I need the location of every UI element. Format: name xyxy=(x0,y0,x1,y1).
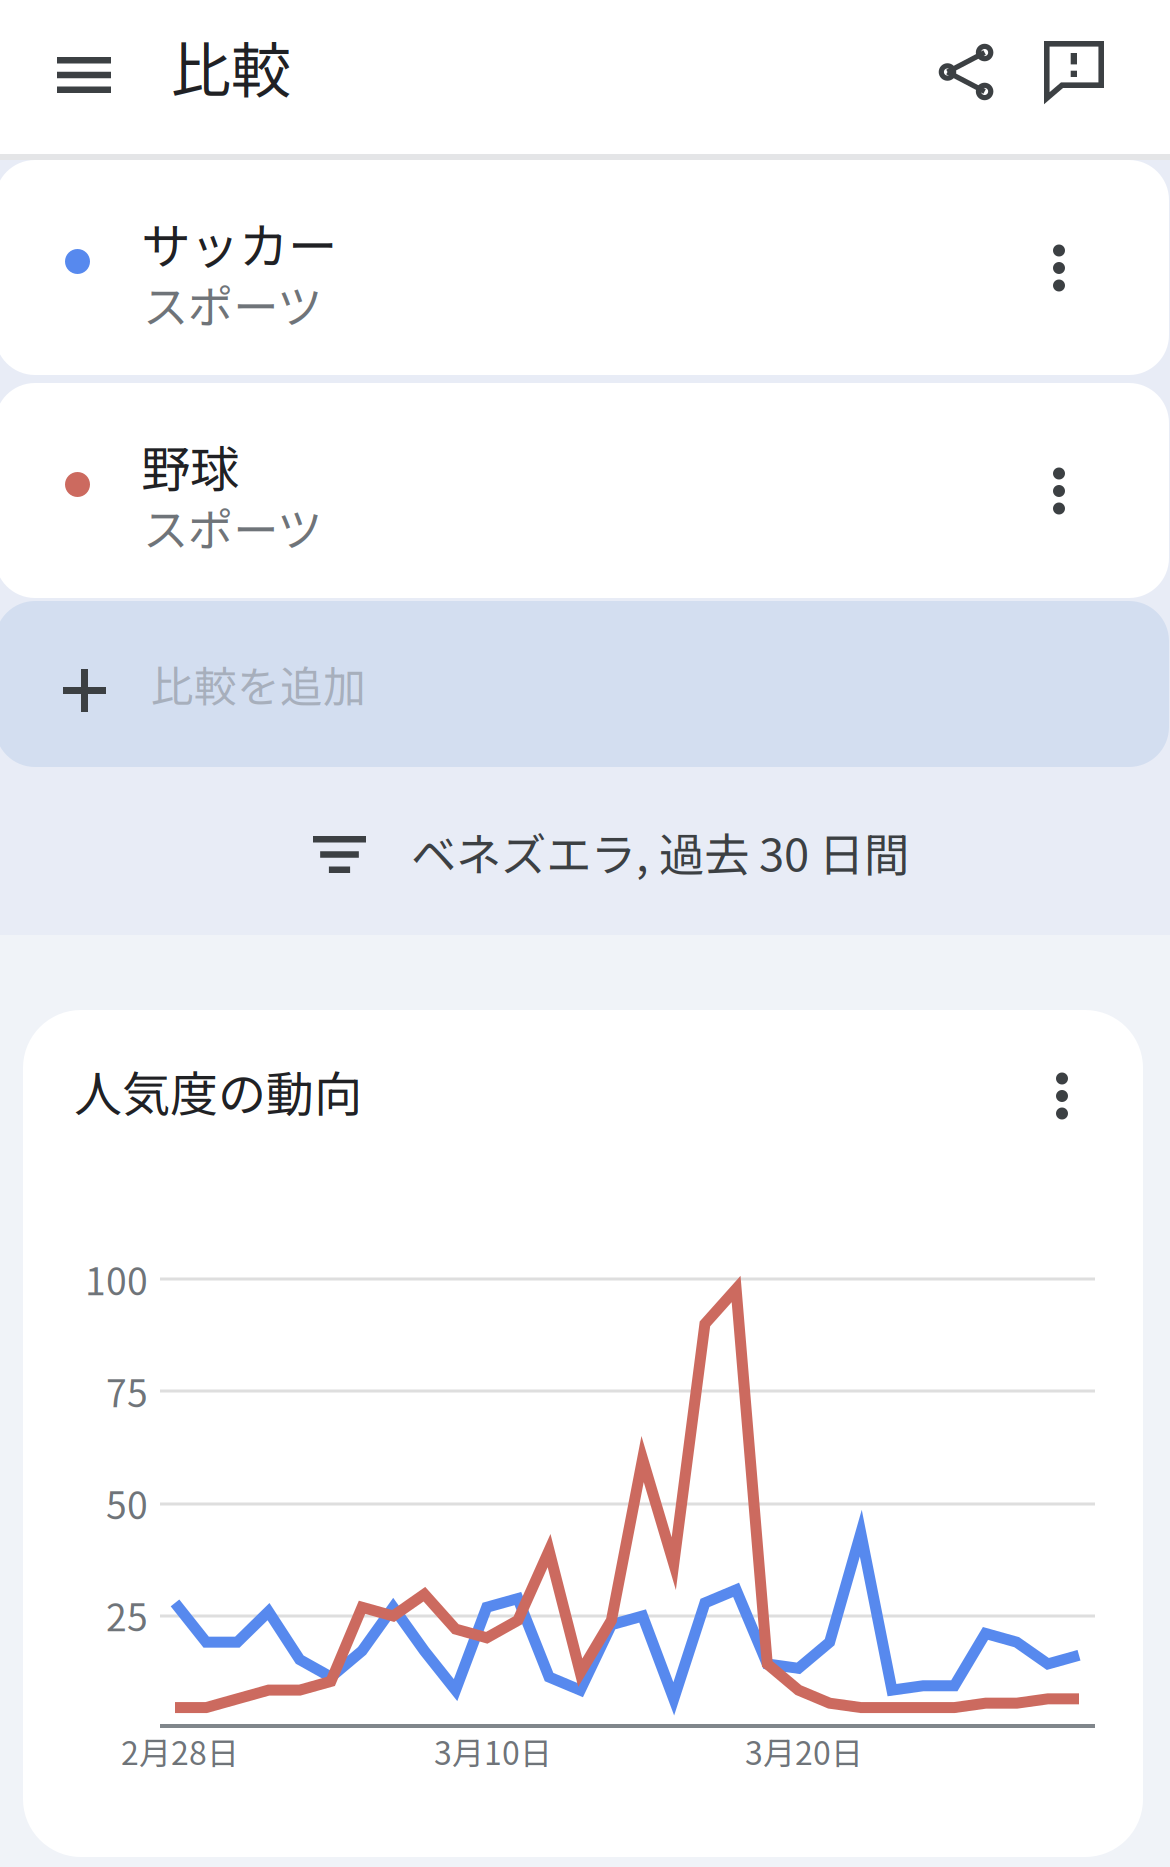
staticText: 2月28日 xyxy=(121,1728,239,1774)
button[interactable]: 比較を追加 xyxy=(0,601,1169,767)
staticText: 100 xyxy=(85,1252,148,1306)
button[interactable]: 野球 xyxy=(0,383,1169,598)
button[interactable]: Menu xyxy=(31,22,137,128)
staticText: 3月20日 xyxy=(745,1728,863,1774)
button[interactable]: Options xyxy=(1019,443,1099,539)
button[interactable]: サッカー xyxy=(0,160,1169,375)
staticText: 3月10日 xyxy=(434,1728,552,1774)
button[interactable]: Chart options xyxy=(1022,1048,1102,1144)
staticText: 比較を追加 xyxy=(151,653,366,715)
staticText: 野球 xyxy=(141,430,239,501)
staticText: 25 xyxy=(106,1588,148,1642)
staticText: 50 xyxy=(106,1476,148,1530)
staticText: ベネズエラ, 過去 30 日間 xyxy=(411,819,909,885)
staticText: スポーツ xyxy=(143,494,322,560)
staticText: スポーツ xyxy=(143,271,322,337)
staticText: サッカー xyxy=(141,207,337,278)
staticText: 人気度の動向 xyxy=(74,1056,362,1125)
button[interactable]: Options xyxy=(1019,220,1099,316)
button[interactable]: Send feedback xyxy=(1020,17,1128,125)
button[interactable]: ベネズエラ, 過去 30 日間 xyxy=(0,799,1168,929)
staticText: 75 xyxy=(106,1364,148,1418)
button[interactable]: Share xyxy=(913,18,1021,126)
staticText: 比較 xyxy=(171,23,291,110)
